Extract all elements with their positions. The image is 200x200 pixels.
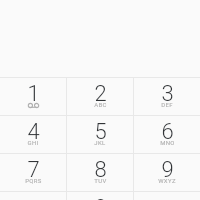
button[interactable]: 2 <box>67 78 133 115</box>
button[interactable]: 4 <box>0 116 66 153</box>
staticText: 6 <box>161 119 174 145</box>
staticText: 2 <box>94 81 107 107</box>
staticText: DEF <box>161 101 173 108</box>
staticText: MNO <box>160 139 175 146</box>
staticText: PQRS <box>25 177 42 184</box>
staticText: 0 <box>94 195 107 200</box>
button[interactable]: 5 <box>67 116 133 153</box>
staticText: 3 <box>161 81 174 107</box>
staticText: 7 <box>27 157 40 183</box>
staticText: ABC <box>94 101 107 108</box>
button[interactable]: 1 <box>0 78 66 115</box>
button[interactable]: 6 <box>134 116 200 153</box>
staticText: JKL <box>94 139 106 146</box>
button[interactable]: 9 <box>134 154 200 191</box>
staticText: WXYZ <box>158 177 176 184</box>
staticText: GHI <box>27 139 39 146</box>
staticText: TUV <box>94 177 107 184</box>
button[interactable]: 7 <box>0 154 66 191</box>
button[interactable]: 0 <box>67 192 133 200</box>
staticText: 8 <box>94 157 107 183</box>
staticText: 1 <box>27 81 40 107</box>
staticText: 4 <box>27 119 40 145</box>
button[interactable]: 3 <box>134 78 200 115</box>
button[interactable]: 8 <box>67 154 133 191</box>
staticText: 9 <box>161 157 174 183</box>
staticText: 5 <box>94 119 107 145</box>
